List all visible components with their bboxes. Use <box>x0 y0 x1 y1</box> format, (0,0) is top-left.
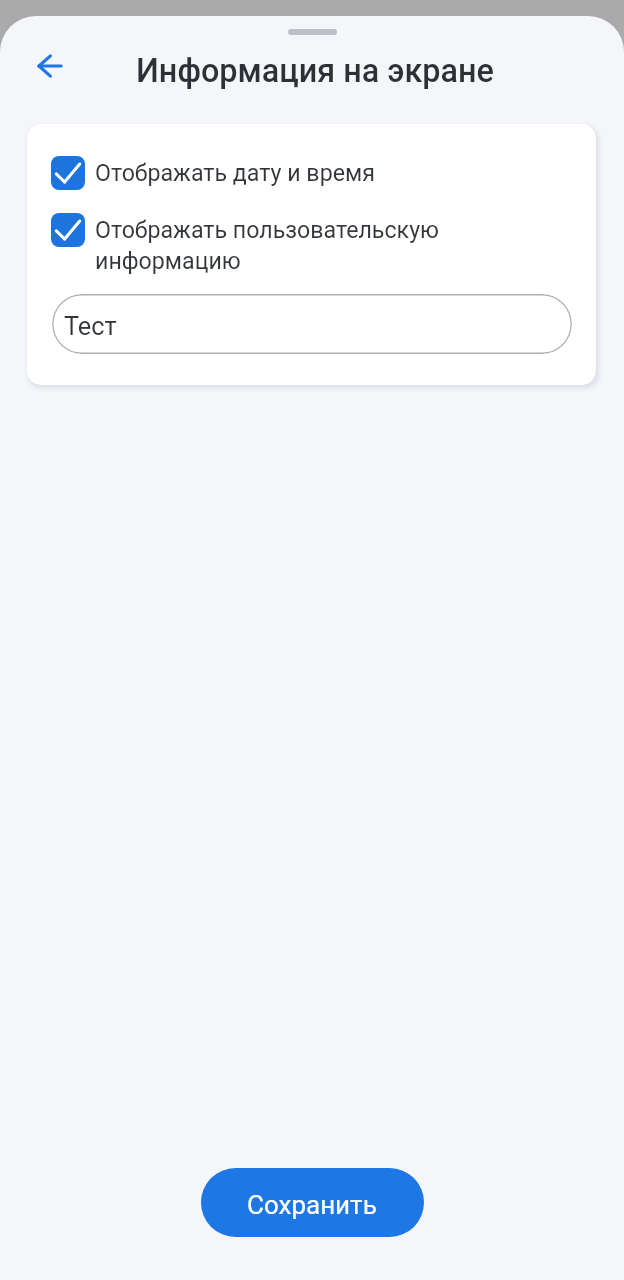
staticText: Информация на экране <box>136 52 494 90</box>
button[interactable]: Отображать дату и время <box>27 148 596 198</box>
staticText: Отображать дату и время <box>95 156 375 187</box>
staticText: Тест <box>64 312 117 342</box>
staticText: Сохранить <box>247 1190 377 1220</box>
button[interactable]: Сохранить <box>201 1168 424 1237</box>
staticText: Отображать пользовательскую информацию <box>95 213 440 275</box>
button[interactable]: Назад <box>26 42 74 90</box>
button[interactable]: Отображать пользовательскую информацию <box>27 205 596 283</box>
button[interactable]: Тест <box>52 294 572 354</box>
